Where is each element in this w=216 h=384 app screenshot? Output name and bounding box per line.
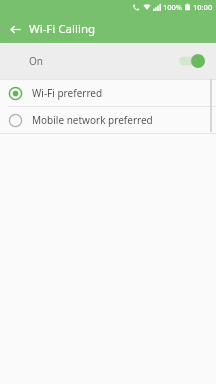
staticText: On	[29, 54, 43, 68]
button[interactable]: Wi-Fi preferred	[0, 80, 216, 106]
staticText: Wi-Fi Calling	[29, 21, 96, 37]
staticText: Mobile network preferred	[32, 113, 153, 127]
button[interactable]: Mobile network preferred	[0, 107, 216, 133]
staticText: 10:00	[193, 2, 213, 12]
staticText: Wi-Fi preferred	[32, 86, 103, 100]
staticText: 100%	[163, 2, 183, 12]
button[interactable]: On	[0, 43, 216, 79]
button[interactable]: Navigate up	[4, 18, 26, 40]
